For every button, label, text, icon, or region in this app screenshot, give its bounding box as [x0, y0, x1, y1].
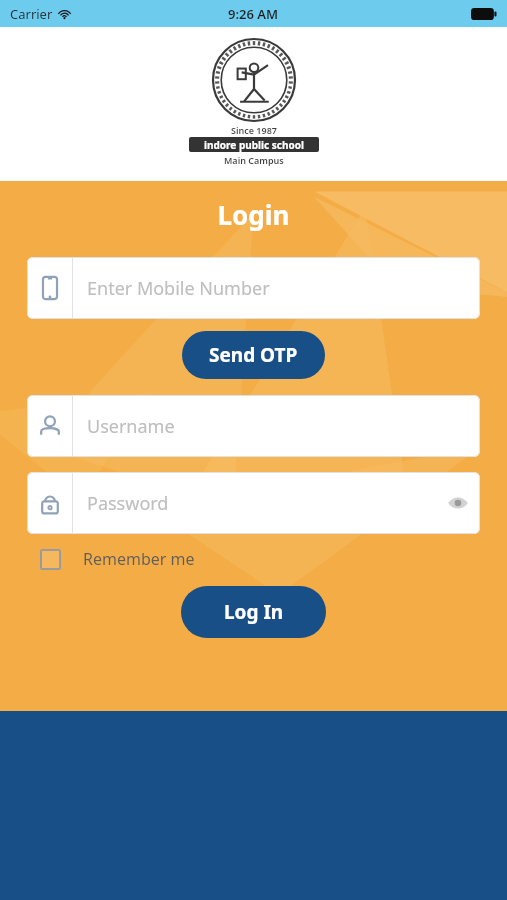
staticText: Main Campus	[224, 154, 284, 166]
staticText: Send OTP	[209, 342, 298, 368]
staticText: Login	[0, 197, 507, 232]
staticText: Username	[87, 414, 480, 439]
staticText: Carrier	[10, 5, 53, 23]
staticText: Enter Mobile Number	[87, 276, 480, 301]
button[interactable]: Show password	[436, 472, 480, 534]
staticText: indore public school	[204, 138, 304, 152]
staticText: 9:26 AM	[228, 5, 279, 23]
button[interactable]: Remember me	[40, 548, 195, 570]
staticText: Since 1987	[231, 124, 277, 136]
staticText: Remember me	[83, 548, 195, 570]
button[interactable]: Log In	[181, 586, 326, 638]
staticText: Log In	[224, 599, 284, 625]
staticText: Password	[87, 491, 436, 516]
button[interactable]: Password	[27, 472, 480, 534]
button[interactable]: Send OTP	[182, 331, 325, 379]
button[interactable]: Username	[27, 395, 480, 457]
button[interactable]: Enter Mobile Number	[27, 257, 480, 319]
